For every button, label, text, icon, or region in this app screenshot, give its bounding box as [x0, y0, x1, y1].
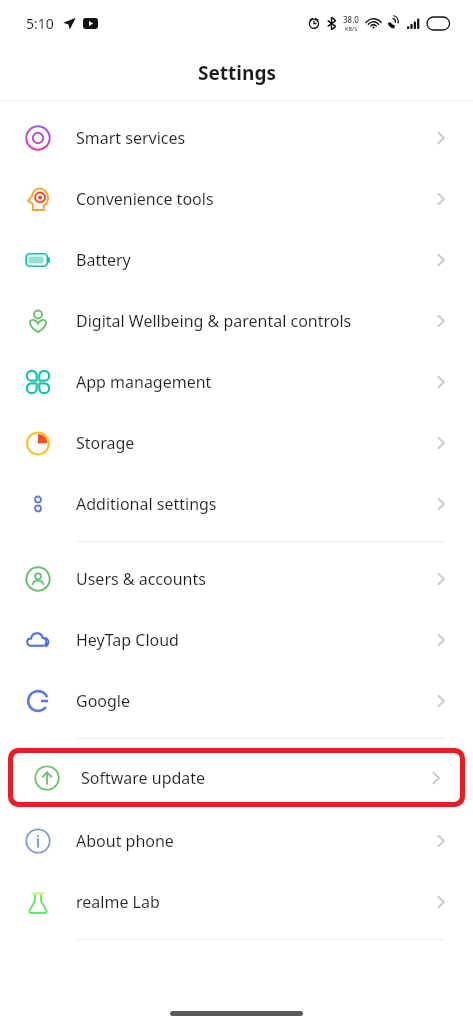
- staticText: Digital Wellbeing & parental controls: [76, 310, 352, 332]
- staticText: Settings: [198, 60, 276, 86]
- button[interactable]: App management: [0, 351, 473, 412]
- button[interactable]: realme Lab: [0, 871, 473, 932]
- staticText: Additional settings: [76, 493, 217, 515]
- staticText: HeyTap Cloud: [76, 629, 179, 651]
- staticText: 5:10: [26, 14, 54, 33]
- staticText: Battery: [76, 249, 131, 271]
- button[interactable]: Storage: [0, 412, 473, 473]
- button[interactable]: Convenience tools: [0, 168, 473, 229]
- button[interactable]: Additional settings: [0, 473, 473, 534]
- button[interactable]: Smart services: [0, 107, 473, 168]
- button[interactable]: Digital Wellbeing & parental controls: [0, 290, 473, 351]
- staticText: Storage: [76, 432, 135, 454]
- staticText: Software update: [81, 767, 206, 789]
- staticText: App management: [76, 371, 212, 393]
- button[interactable]: Google: [0, 670, 473, 731]
- staticText: KB/S: [345, 25, 358, 32]
- button[interactable]: Battery: [0, 229, 473, 290]
- staticText: 38.0: [343, 14, 359, 25]
- button[interactable]: Users & accounts: [0, 548, 473, 609]
- button[interactable]: Software update: [13, 753, 460, 802]
- button[interactable]: About phone: [0, 810, 473, 871]
- staticText: realme Lab: [76, 891, 160, 913]
- staticText: Google: [76, 690, 131, 712]
- staticText: About phone: [76, 830, 174, 852]
- button[interactable]: HeyTap Cloud: [0, 609, 473, 670]
- staticText: Smart services: [76, 127, 186, 149]
- staticText: Users & accounts: [76, 568, 206, 590]
- staticText: Convenience tools: [76, 188, 214, 210]
